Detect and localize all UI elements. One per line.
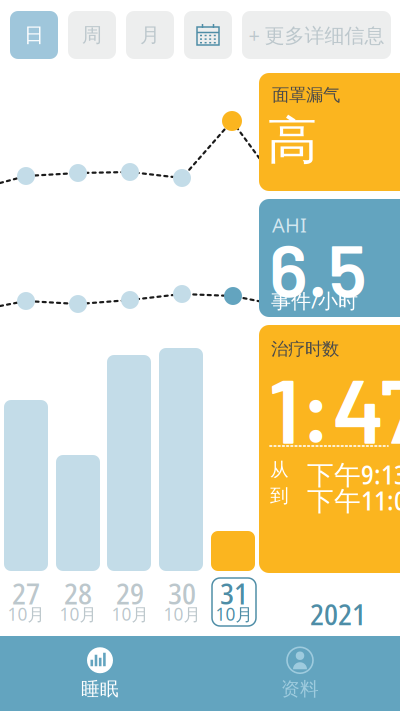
staticText: 10月 xyxy=(163,602,200,626)
button[interactable]: 27 xyxy=(0,578,52,626)
staticText: AHI xyxy=(272,211,307,238)
staticText: 29 xyxy=(116,573,144,613)
staticText: 30 xyxy=(168,573,196,613)
staticText: 10月 xyxy=(59,602,96,626)
button[interactable]: 面罩漏气 xyxy=(259,73,400,191)
staticText: 1:47 xyxy=(268,353,400,462)
staticText: 31 xyxy=(220,573,248,613)
button[interactable]: 31 xyxy=(208,578,260,626)
button[interactable]: 治疗时数 xyxy=(259,325,400,573)
button[interactable]: 睡眠 xyxy=(0,636,200,711)
staticText: 日 xyxy=(24,22,44,48)
staticText: 高 xyxy=(267,109,318,173)
staticText: 28 xyxy=(64,573,92,613)
staticText: 下午9:13 xyxy=(307,456,400,492)
button[interactable]: 日 xyxy=(10,11,58,59)
staticText: 资料 xyxy=(281,677,319,701)
staticText: 10月 xyxy=(7,602,44,626)
staticText: 27 xyxy=(12,573,40,613)
staticText: 2021 xyxy=(310,594,366,634)
button[interactable]: 周 xyxy=(68,11,116,59)
button[interactable]: 28 xyxy=(52,578,104,626)
staticText: + 更多详细信息 xyxy=(248,21,384,49)
button[interactable]: 30 xyxy=(156,578,208,626)
staticText: 面罩漏气 xyxy=(272,84,340,106)
staticText: 10月 xyxy=(215,602,252,626)
button[interactable]: AHI xyxy=(259,199,400,317)
button[interactable]: 资料 xyxy=(200,636,400,711)
staticText: 到 xyxy=(270,484,289,507)
button[interactable]: + 更多详细信息 xyxy=(242,11,391,59)
button[interactable]: 月 xyxy=(126,11,174,59)
staticText: 月 xyxy=(140,22,160,48)
staticText: 周 xyxy=(82,22,102,48)
staticText: 10月 xyxy=(111,602,148,626)
staticText: 睡眠 xyxy=(81,677,119,701)
staticText: 从 xyxy=(270,458,289,481)
staticText: 治疗时数 xyxy=(271,338,339,360)
staticText: 事件/小时 xyxy=(271,287,358,314)
button[interactable]: 29 xyxy=(104,578,156,626)
staticText: 下午11:00 xyxy=(307,482,400,518)
staticText: 6.5 xyxy=(269,224,367,312)
button[interactable]: 日历 xyxy=(184,11,232,59)
